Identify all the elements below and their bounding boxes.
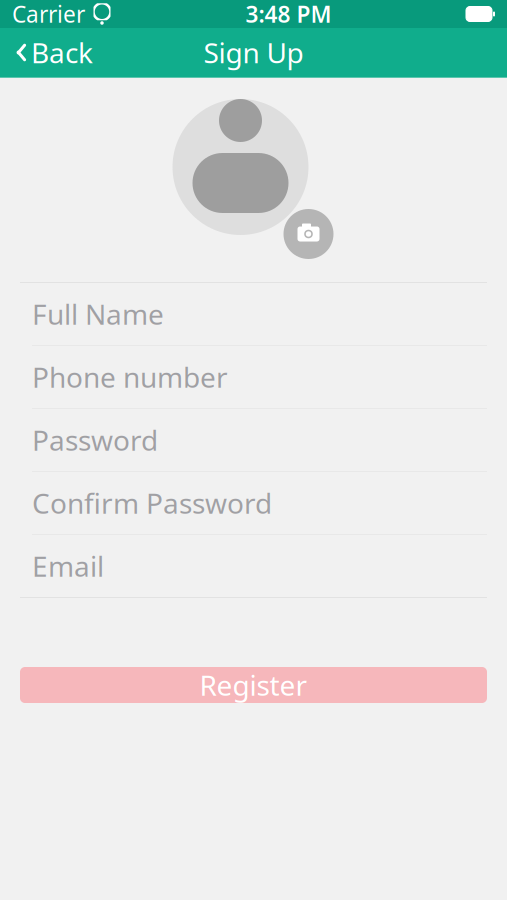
staticText: Sign Up [203, 34, 303, 71]
staticText: Carrier [12, 0, 85, 29]
button[interactable]: Password [0, 409, 507, 471]
button[interactable]: Confirm Password [0, 472, 507, 534]
staticText: Confirm Password [32, 484, 272, 522]
staticText: Phone number [32, 358, 228, 396]
staticText: Email [32, 547, 104, 585]
staticText: Password [32, 421, 158, 459]
button[interactable]: Change profile photo [172, 99, 334, 261]
staticText: Full Name [32, 295, 164, 333]
staticText: Register [199, 666, 307, 704]
button[interactable]: Phone number [0, 346, 507, 408]
staticText: Back [31, 34, 93, 71]
button[interactable]: Back [0, 28, 105, 77]
button[interactable]: Register [20, 667, 487, 703]
staticText: 3:48 PM [245, 0, 331, 29]
button[interactable]: Full Name [0, 283, 507, 345]
button[interactable]: Email [0, 535, 507, 597]
